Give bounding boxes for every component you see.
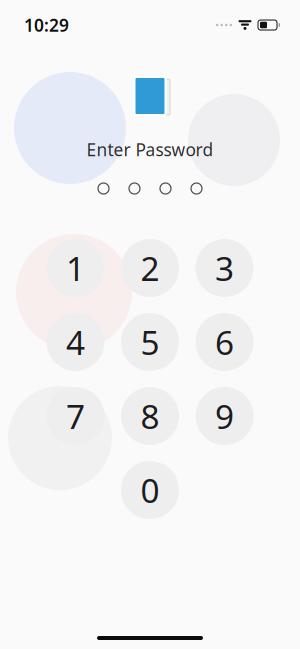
button[interactable]: 6 xyxy=(195,313,253,371)
staticText: 8 xyxy=(140,394,159,438)
button[interactable]: 9 xyxy=(195,387,253,445)
staticText: 1 xyxy=(66,246,85,290)
staticText: 0 xyxy=(140,468,159,512)
button[interactable]: 4 xyxy=(46,313,104,371)
button[interactable]: 2 xyxy=(121,239,179,297)
button[interactable]: 1 xyxy=(46,239,104,297)
staticText: 6 xyxy=(215,320,234,364)
staticText: 5 xyxy=(140,320,159,364)
staticText: 2 xyxy=(140,246,159,290)
button[interactable]: 5 xyxy=(121,313,179,371)
button[interactable]: 8 xyxy=(121,387,179,445)
staticText: 3 xyxy=(215,246,234,290)
button[interactable]: 0 xyxy=(121,461,179,519)
button[interactable]: 7 xyxy=(46,387,104,445)
staticText: 4 xyxy=(66,320,85,364)
staticText: 7 xyxy=(66,394,85,438)
staticText: 9 xyxy=(215,394,234,438)
staticText: Enter Password xyxy=(86,138,213,161)
staticText: 10:29 xyxy=(24,13,69,36)
button[interactable]: 3 xyxy=(195,239,253,297)
